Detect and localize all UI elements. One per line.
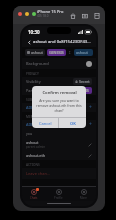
- button[interactable]: ashout: [27, 50, 43, 55]
- staticText: GENESIS: [49, 50, 64, 55]
- staticText: ADD MEMBER: [26, 122, 89, 127]
- staticText: ashout and 0x8f15423DF4327010a7908...: [33, 39, 93, 45]
- staticText: ashout: [26, 140, 39, 145]
- button[interactable]: ashout: [26, 140, 92, 149]
- staticText: SUBCHANNELS: [26, 98, 49, 102]
- staticText: ashout and 0x8f1542: [76, 50, 91, 55]
- staticText: Chats: [30, 196, 38, 200]
- staticText: Background: [26, 61, 86, 66]
- button[interactable]: Zoom: [32, 12, 36, 16]
- button[interactable]: OK: [59, 118, 86, 128]
- staticText: GENESIS: [74, 88, 89, 93]
- staticText: Visibility: [26, 79, 73, 84]
- button[interactable]: Home: [69, 12, 76, 19]
- button[interactable]: Close: [18, 12, 22, 16]
- staticText: iPhone 15 Pro: [37, 9, 64, 14]
- staticText: Secret: [79, 79, 90, 84]
- staticText: Profile: [54, 196, 63, 200]
- staticText: OK: [70, 121, 76, 126]
- staticText: parent admin: [26, 145, 46, 149]
- other: Edit: [88, 154, 92, 158]
- button[interactable]: ADD SUBCHANNEL: [26, 103, 92, 112]
- staticText: Confirm removal: [42, 90, 77, 96]
- button[interactable]: Visibility: [26, 77, 92, 86]
- staticText: More: [80, 196, 87, 200]
- button[interactable]: Leave chan...: [26, 171, 92, 176]
- button[interactable]: Background color: [86, 61, 92, 67]
- button[interactable]: ashout.eth: [26, 153, 92, 158]
- staticText: ACTIONS: [26, 163, 40, 167]
- button[interactable]: Parent: [26, 86, 92, 95]
- button[interactable]: Secret: [75, 79, 90, 84]
- button[interactable]: Cancel: [32, 118, 58, 128]
- button[interactable]: GENESIS: [49, 50, 64, 55]
- staticText: 10:30: [28, 29, 40, 35]
- button[interactable]: Record: [93, 12, 100, 19]
- staticText: Leave chan...: [26, 171, 51, 176]
- staticText: iOS 18.0: [37, 14, 49, 18]
- staticText: +: [89, 121, 92, 128]
- other: Edit: [88, 143, 92, 147]
- button[interactable]: Back: [25, 38, 33, 46]
- staticText: ashout.eth: [26, 153, 46, 158]
- staticText: Are you sure you want to remove ashout.e…: [36, 98, 82, 113]
- staticText: ashout: [31, 50, 43, 55]
- button[interactable]: ashout and 0x8f1542: [76, 50, 91, 55]
- staticText: MEMBERS: [26, 115, 42, 119]
- staticText: ↕: [68, 50, 72, 55]
- staticText: PRIVACY: [26, 72, 39, 76]
- button[interactable]: Chats: [22, 187, 46, 201]
- button[interactable]: Screenshot: [81, 12, 88, 19]
- button[interactable]: More: [71, 187, 96, 201]
- staticText: Parent: [26, 88, 71, 93]
- button[interactable]: Minimize: [25, 12, 29, 16]
- staticText: you: [26, 131, 33, 136]
- button[interactable]: Profile: [46, 187, 71, 201]
- button[interactable]: GENESIS: [74, 88, 89, 93]
- staticText: Cancel: [39, 121, 52, 126]
- staticText: ADD SUBCHANNEL: [26, 105, 89, 110]
- staticText: +: [89, 104, 92, 111]
- button[interactable]: ADD MEMBER: [26, 120, 92, 129]
